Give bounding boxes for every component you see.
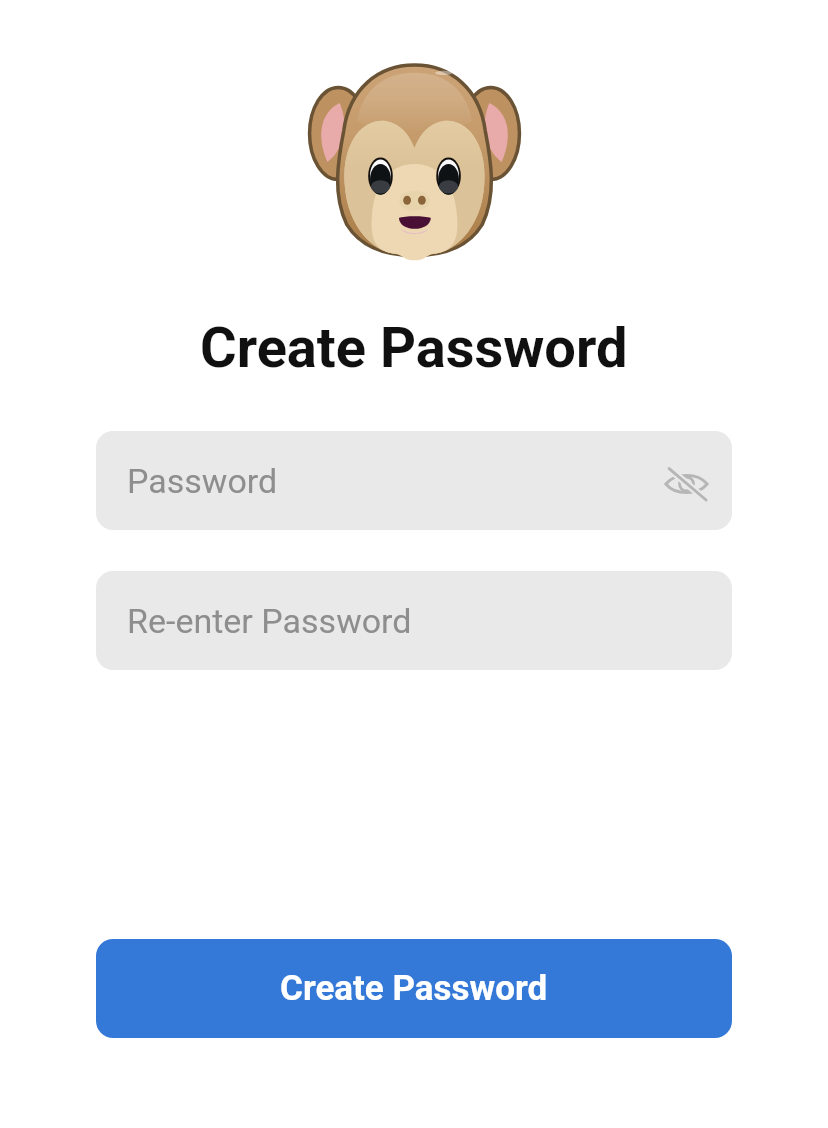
staticText: Password [127, 461, 278, 501]
button[interactable]: Re-enter Password [96, 571, 732, 670]
staticText: Create Password [280, 968, 548, 1009]
button[interactable]: Show password [655, 450, 717, 512]
staticText: Re-enter Password [127, 601, 412, 641]
staticText: Create Password [200, 315, 628, 381]
button[interactable]: Create Password [96, 939, 732, 1038]
button[interactable]: Password [96, 431, 732, 530]
